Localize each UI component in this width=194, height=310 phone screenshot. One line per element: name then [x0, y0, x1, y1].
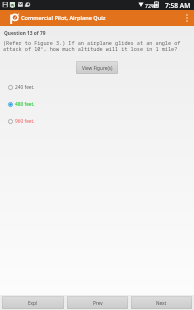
button[interactable]: 960 feet.	[0, 113, 194, 130]
button[interactable]: Next	[131, 296, 192, 309]
button[interactable]: Prev	[67, 296, 128, 309]
staticText: (Refer to Figure 3.) If an airplane glid…	[3, 39, 181, 52]
staticText: 960 feet.	[15, 118, 35, 125]
staticText: 480 feet.	[15, 101, 35, 108]
button[interactable]: 480 feet.	[0, 96, 194, 113]
button[interactable]: View Figure(s)	[76, 61, 118, 74]
staticText: Question 13 of 79	[4, 30, 46, 37]
staticText: Next	[156, 300, 167, 306]
staticText: View Figure(s)	[82, 65, 113, 71]
staticText: 240 feet.	[15, 84, 35, 91]
staticText: Expl	[28, 300, 38, 306]
button[interactable]: Expl	[2, 296, 64, 309]
button[interactable]: 240 feet.	[0, 79, 194, 96]
staticText: 72%	[145, 2, 156, 9]
button[interactable]: More options	[180, 10, 194, 26]
staticText: Commercial Pilot, Airplane Quiz	[21, 14, 106, 22]
staticText: 7:58 AM	[165, 1, 191, 10]
staticText: Prev	[93, 300, 103, 306]
